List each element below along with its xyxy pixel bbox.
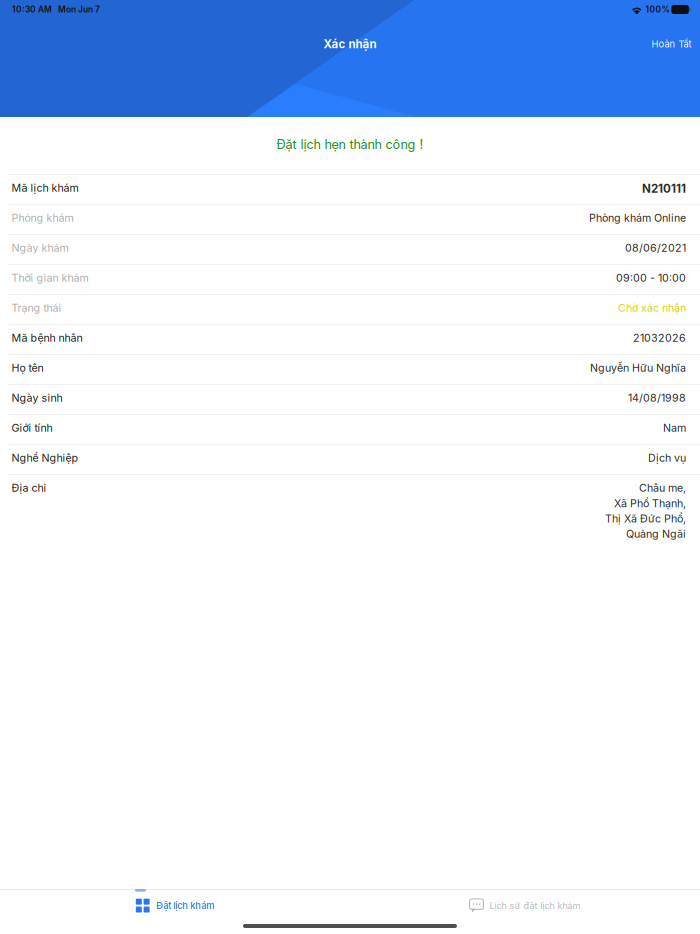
staticText: Ngày khám <box>11 241 68 254</box>
staticText: Phòng khám Online <box>588 211 685 224</box>
staticText: Đặt lịch hẹn thành công ! <box>276 137 423 152</box>
staticText: Phòng khám <box>11 211 73 224</box>
button[interactable]: Lịch sử đặt lịch khám <box>350 892 700 920</box>
staticText: 08/06/2021 <box>624 241 685 254</box>
staticText: Mã lịch khám <box>11 181 78 194</box>
staticText: Lịch sử đặt lịch khám <box>489 900 580 911</box>
staticText: Chờ xác nhận <box>617 301 685 314</box>
staticText: Hoàn Tất <box>651 38 691 50</box>
button[interactable]: Đặt lịch khám <box>0 892 350 920</box>
staticText: Trạng thái <box>11 301 61 314</box>
staticText: Giới tính <box>11 421 52 434</box>
staticText: 100% <box>643 4 671 15</box>
staticText: 10:30 AM <box>12 4 52 15</box>
staticText: Dịch vụ <box>647 451 685 464</box>
staticText: N210111 <box>641 181 685 195</box>
staticText: Ngày sinh <box>11 391 62 404</box>
staticText: Mã bệnh nhân <box>11 331 82 344</box>
staticText: Đặt lịch khám <box>156 900 214 911</box>
staticText: 21032026 <box>632 331 685 344</box>
staticText: Nam <box>662 421 685 434</box>
staticText: Châu me, Xã Phổ Thạnh, Thị Xã Đức Phổ, Q… <box>604 481 685 540</box>
staticText: 09:00 - 10:00 <box>615 271 685 284</box>
staticText: Xác nhận <box>323 37 376 51</box>
staticText: Nguyễn Hữu Nghĩa <box>589 361 685 374</box>
staticText: 14/08/1998 <box>627 391 685 404</box>
button[interactable]: Hoàn Tất <box>641 29 700 59</box>
staticText: Mon Jun 7 <box>52 4 100 15</box>
staticText: Nghề Nghiệp <box>11 451 78 464</box>
staticText: Họ tên <box>11 361 43 374</box>
staticText: Địa chỉ <box>11 481 46 494</box>
staticText: Thời gian khám <box>11 271 88 284</box>
